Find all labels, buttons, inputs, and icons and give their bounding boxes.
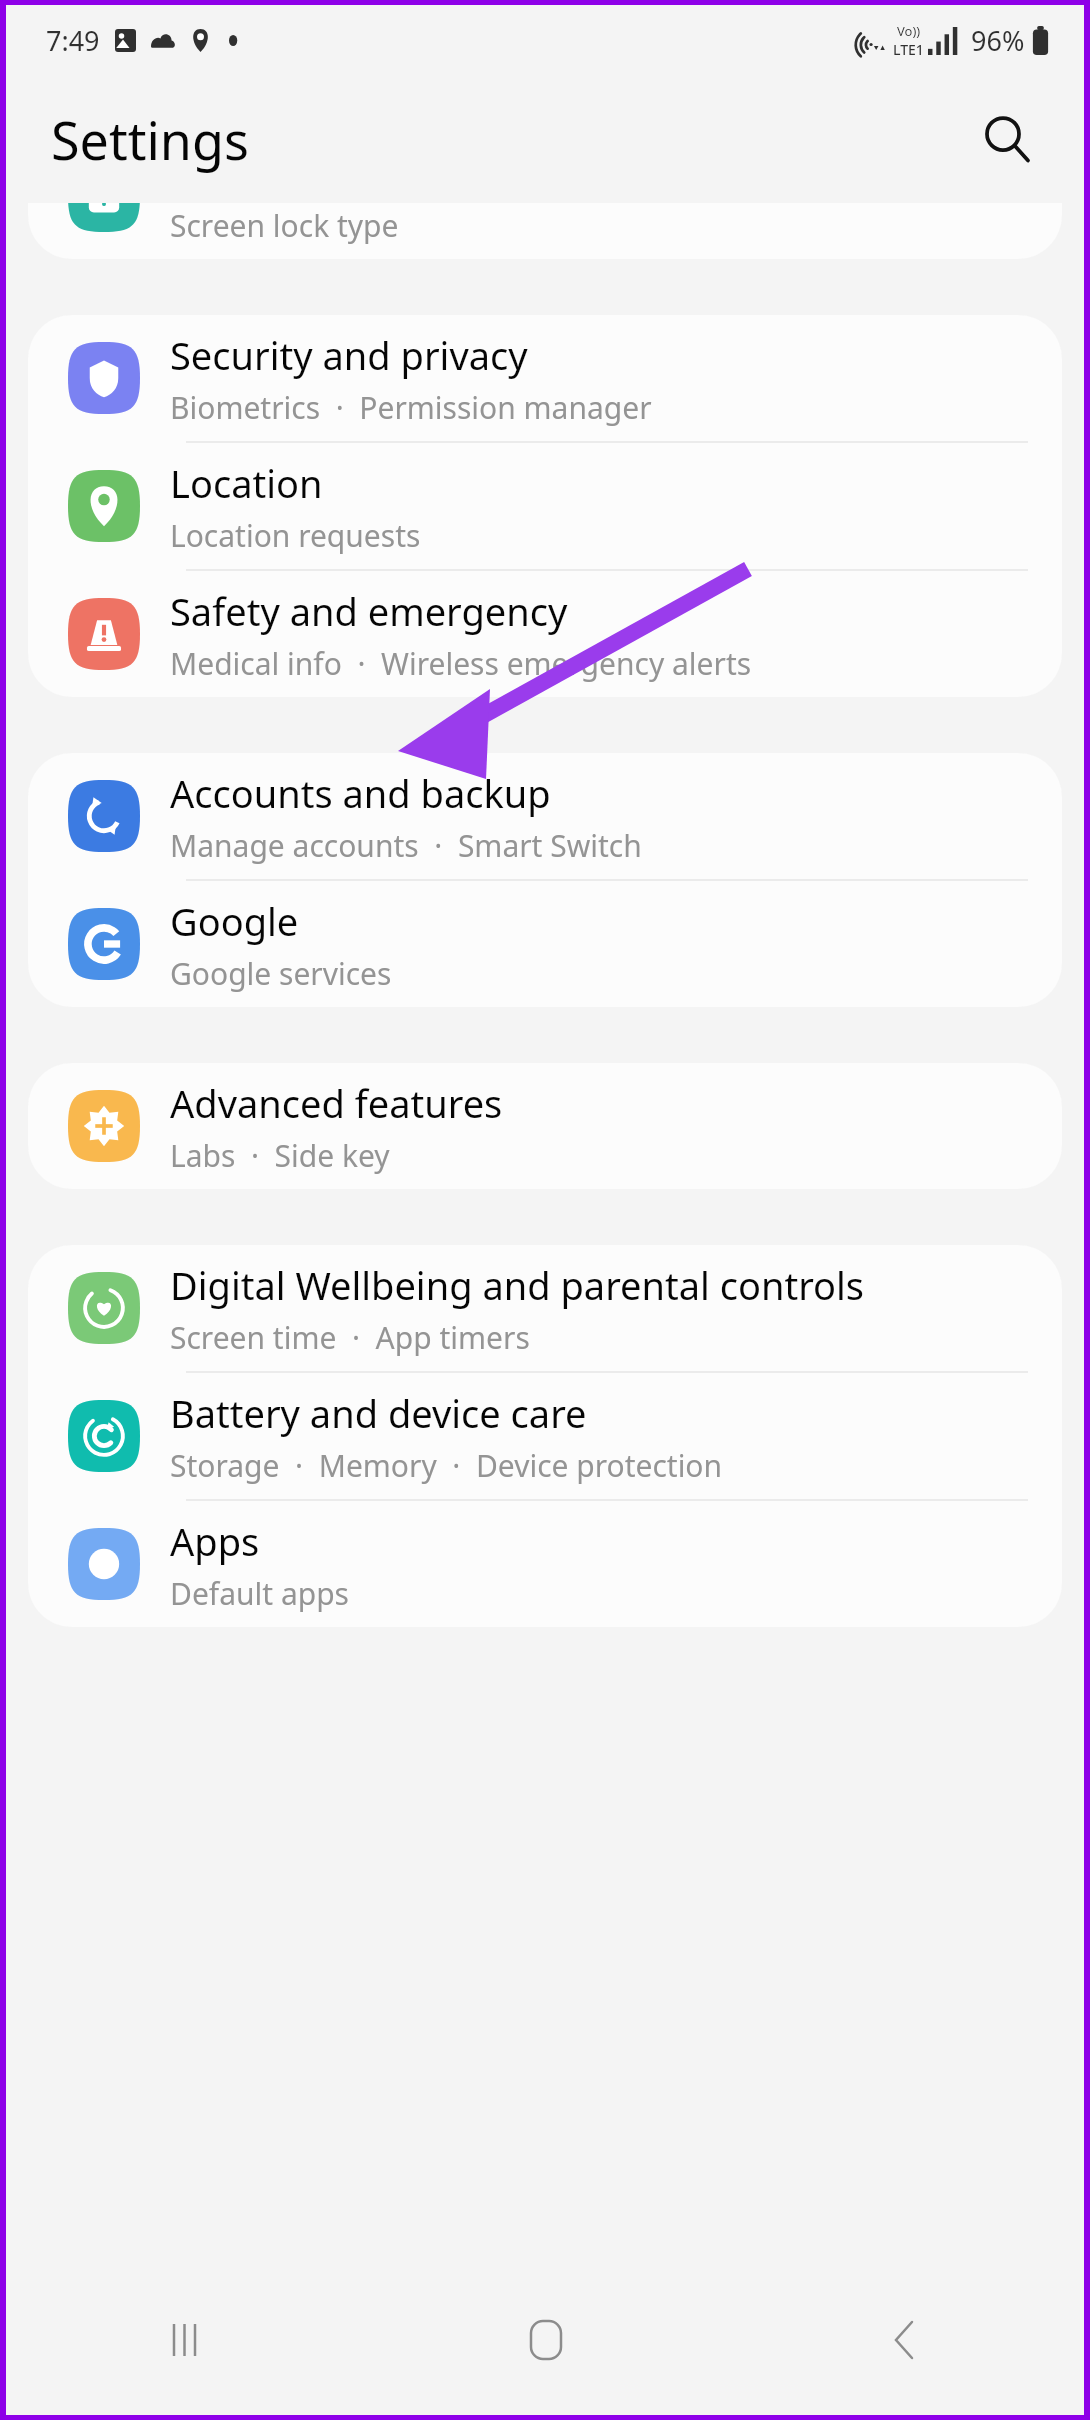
staticText: Google services bbox=[170, 953, 392, 994]
staticText: 7:49 bbox=[46, 22, 100, 59]
button[interactable]: Location bbox=[28, 443, 1062, 569]
staticText: Safety and emergency bbox=[170, 585, 568, 637]
staticText: Battery and device care bbox=[170, 1387, 587, 1439]
staticText: Apps bbox=[170, 1515, 260, 1567]
button[interactable]: Search bbox=[966, 98, 1048, 180]
staticText: Settings bbox=[51, 104, 249, 175]
button[interactable]: Accounts and backup bbox=[28, 753, 1062, 879]
staticText: Storage · Memory · Device protection bbox=[170, 1445, 723, 1486]
staticText: Digital Wellbeing and parental controls bbox=[170, 1259, 865, 1311]
staticText: Medical info · Wireless emergency alerts bbox=[170, 643, 752, 684]
button[interactable]: Lock screen bbox=[28, 203, 1062, 259]
staticText: Labs · Side key bbox=[170, 1135, 390, 1176]
button[interactable]: Security and privacy bbox=[28, 315, 1062, 441]
staticText: Biometrics · Permission manager bbox=[170, 387, 652, 428]
staticText: Manage accounts · Smart Switch bbox=[170, 825, 642, 866]
button[interactable]: Digital Wellbeing and parental controls bbox=[28, 1245, 1062, 1371]
button[interactable]: Apps bbox=[28, 1501, 1062, 1627]
button[interactable]: Battery and device care bbox=[28, 1373, 1062, 1499]
button[interactable]: Back bbox=[725, 2265, 1084, 2415]
staticText: Google bbox=[170, 895, 299, 947]
staticText: Security and privacy bbox=[170, 329, 528, 381]
staticText: Location bbox=[170, 457, 323, 509]
button[interactable]: Safety and emergency bbox=[28, 571, 1062, 697]
button[interactable]: Advanced features bbox=[28, 1063, 1062, 1189]
staticText: Accounts and backup bbox=[170, 767, 551, 819]
staticText: Screen time · App timers bbox=[170, 1317, 530, 1358]
staticText: LTE1 bbox=[893, 40, 924, 59]
button[interactable]: Google bbox=[28, 881, 1062, 1007]
staticText: 96% bbox=[971, 22, 1025, 59]
staticText: Vo)) bbox=[897, 22, 921, 40]
staticText: Location requests bbox=[170, 515, 421, 556]
staticText: Default apps bbox=[170, 1573, 349, 1614]
button[interactable]: Recent apps bbox=[6, 2265, 366, 2415]
staticText: Advanced features bbox=[170, 1077, 503, 1129]
button[interactable]: Home bbox=[366, 2265, 725, 2415]
staticText: Screen lock type bbox=[170, 205, 399, 246]
